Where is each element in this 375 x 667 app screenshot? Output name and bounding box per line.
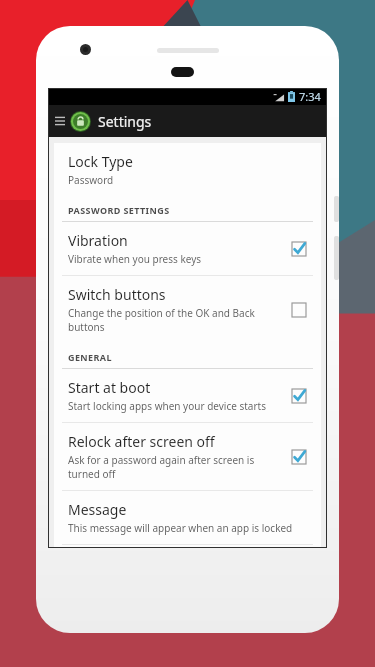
staticText: Vibrate when you press keys <box>68 252 202 266</box>
button[interactable]: Checked <box>287 384 311 408</box>
button[interactable]: Vibration <box>54 222 321 275</box>
staticText: Ask for a password again after screen is… <box>68 453 279 481</box>
staticText: Password <box>68 173 114 187</box>
staticText: Start at boot <box>68 378 151 397</box>
button[interactable]: Checked <box>287 445 311 469</box>
staticText: This message will appear when an app is … <box>68 521 293 535</box>
button[interactable]: Relock after screen off <box>54 423 321 490</box>
staticText: Settings <box>98 112 152 131</box>
staticText: PASSWORD SETTINGS <box>68 204 170 216</box>
button[interactable]: Message <box>54 491 321 544</box>
button[interactable]: Unchecked <box>287 298 311 322</box>
staticText: Switch buttons <box>68 285 166 304</box>
staticText: Change the position of the OK and Back b… <box>68 306 279 334</box>
button[interactable]: Start at boot <box>54 369 321 422</box>
button[interactable]: Switch buttons <box>54 276 321 343</box>
button[interactable]: Lock Type <box>54 143 321 196</box>
button[interactable]: Checked <box>287 237 311 261</box>
button[interactable]: Open navigation menu <box>52 108 68 134</box>
staticText: Relock after screen off <box>68 432 215 451</box>
staticText: Vibration <box>68 231 128 250</box>
staticText: Lock Type <box>68 152 133 171</box>
staticText: 7:34 <box>299 89 321 104</box>
staticText: GENERAL <box>68 351 112 363</box>
staticText: Start locking apps when your device star… <box>68 399 266 413</box>
staticText: Message <box>68 500 127 519</box>
